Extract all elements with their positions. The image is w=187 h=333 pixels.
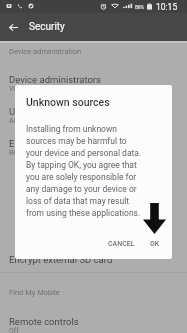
button[interactable]: OK — [146, 235, 164, 253]
staticText: Remote controls — [9, 316, 79, 327]
staticText: any damage to your device or — [26, 184, 137, 194]
staticText: Unknown sources — [26, 96, 110, 108]
staticText: 86% — [135, 4, 145, 10]
staticText: Security — [29, 21, 65, 33]
staticText: 10:15 — [156, 2, 178, 12]
button[interactable]: Encrypt external SD card — [0, 254, 187, 265]
staticText: Installing from unknown — [26, 124, 118, 134]
staticText: CANCEL — [108, 240, 135, 248]
staticText: sources may be harmful to — [26, 136, 127, 146]
button[interactable]: CANCEL — [104, 235, 139, 253]
staticText: Find My Mobile — [9, 288, 60, 297]
staticText: Unknown sources — [9, 106, 85, 117]
button[interactable]: Back — [0, 14, 26, 40]
button[interactable]: Device administrators — [0, 74, 187, 93]
staticText: you are solely responsible for — [26, 172, 137, 182]
staticText: from using these applications. — [26, 208, 141, 218]
staticText: loss of data that may result — [26, 196, 129, 206]
staticText: your device and personal data. — [26, 148, 142, 158]
staticText: Off — [9, 327, 19, 333]
staticText: Encrypt external SD card — [9, 254, 113, 265]
staticText: View or deactivate device administrators — [9, 85, 136, 93]
staticText: OK — [150, 240, 160, 248]
button[interactable]: Encrypt device — [0, 138, 187, 157]
staticText: By tapping OK, you agree that — [26, 160, 137, 170]
staticText: Require a numeric PIN or password to dec… — [9, 149, 152, 157]
staticText: Allow installation of apps from unknown … — [9, 117, 161, 125]
staticText: Device administration — [9, 47, 82, 56]
button[interactable]: Unknown sources — [0, 106, 187, 125]
staticText: Device administrators — [9, 74, 101, 85]
button[interactable]: Remote controls — [0, 316, 187, 333]
staticText: Encrypt device — [9, 138, 71, 149]
